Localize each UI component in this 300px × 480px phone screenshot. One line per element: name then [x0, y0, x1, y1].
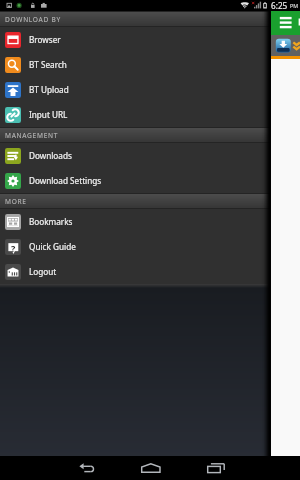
staticText: 6:25 [271, 0, 288, 11]
staticText: BT Search [29, 59, 67, 70]
staticText: MORE [5, 197, 27, 206]
staticText: MANAGEMENT [5, 131, 59, 140]
staticText: Bookmarks [29, 216, 73, 227]
staticText: Downloads [29, 150, 72, 161]
staticText: PM [290, 2, 299, 9]
staticText: Browser [29, 34, 61, 45]
staticText: Quick Guide [29, 241, 76, 252]
staticText: DOWNLOAD BY [5, 15, 61, 24]
button[interactable]: Bookmarks [0, 209, 271, 234]
button[interactable]: Browser [0, 27, 271, 52]
button[interactable]: Downloads [0, 143, 271, 168]
button[interactable]: ? [0, 234, 271, 259]
button[interactable]: Input URL [0, 102, 271, 127]
staticText: Input URL [29, 109, 68, 120]
button[interactable]: Home [130, 456, 171, 480]
staticText: Download Settings [29, 175, 102, 186]
staticText: BT Upload [29, 84, 69, 95]
button[interactable]: Recent apps [195, 456, 236, 480]
staticText: ? [11, 242, 16, 254]
button[interactable]: Logout [0, 259, 271, 284]
button[interactable]: Download Settings [0, 168, 271, 193]
button[interactable]: BT Upload [0, 77, 271, 102]
button[interactable]: BT Search [0, 52, 271, 77]
staticText: Logout [29, 266, 57, 277]
button[interactable]: Back [66, 456, 107, 480]
